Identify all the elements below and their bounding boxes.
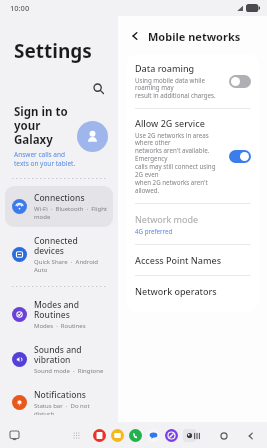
- staticText: Status bar · Do not disturb: [34, 402, 90, 415]
- staticText: Sign in to your Galaxy: [14, 104, 77, 147]
- button[interactable]: [229, 150, 251, 163]
- button[interactable]: Home: [217, 429, 230, 442]
- button[interactable]: Apps: [71, 430, 82, 441]
- button[interactable]: Notifications: [5, 383, 113, 421]
- staticText: Using mobile data while roaming may resu…: [135, 76, 223, 100]
- staticText: Connections: [34, 192, 85, 204]
- button[interactable]: Recent apps panel: [8, 429, 20, 441]
- staticText: 4G preferred: [135, 227, 173, 235]
- staticText: Network mode: [135, 213, 199, 225]
- staticText: Modes · Routines: [34, 322, 86, 330]
- staticText: Wi-Fi · Bluetooth · Flight mode: [34, 205, 108, 221]
- button[interactable]: App: [165, 429, 178, 442]
- button[interactable]: Sign in to your Galaxy: [14, 104, 108, 168]
- staticText: Sounds and vibration: [34, 344, 82, 366]
- button[interactable]: App: [111, 429, 124, 442]
- button[interactable]: Search settings: [0, 78, 118, 98]
- staticText: Sound mode · Ringtone: [34, 367, 104, 375]
- button[interactable]: App: [93, 429, 106, 442]
- staticText: 10:00: [10, 3, 30, 13]
- button[interactable]: Network mode: [126, 204, 259, 244]
- staticText: Connected devices: [34, 235, 108, 257]
- staticText: Use 2G networks in areas where other net…: [135, 131, 223, 195]
- staticText: Network operators: [135, 285, 217, 297]
- staticText: Mobile networks: [148, 29, 241, 44]
- button[interactable]: App: [147, 429, 160, 442]
- button[interactable]: Sounds and vibration: [5, 338, 113, 381]
- button[interactable]: Allow 2G service: [126, 109, 259, 203]
- button[interactable]: Access Point Names: [126, 245, 259, 275]
- button[interactable]: [229, 75, 251, 88]
- staticText: Allow 2G service: [135, 117, 205, 129]
- staticText: Quick Share · Android Auto: [34, 258, 99, 274]
- staticText: Notifications: [34, 389, 86, 401]
- button[interactable]: Connected devices: [5, 229, 113, 280]
- staticText: Modes and Routines: [34, 299, 79, 321]
- button[interactable]: Back: [244, 429, 257, 442]
- button[interactable]: Modes and Routines: [5, 293, 113, 336]
- staticText: Data roaming: [135, 62, 195, 74]
- staticText: Answer calls and texts on your tablet.: [14, 150, 76, 168]
- button[interactable]: App: [183, 429, 196, 442]
- button[interactable]: Network operators: [126, 276, 259, 306]
- staticText: Settings: [14, 38, 92, 64]
- button[interactable]: Recents: [190, 429, 203, 442]
- button[interactable]: Data roaming: [126, 54, 259, 108]
- button[interactable]: Back: [127, 28, 143, 44]
- staticText: Access Point Names: [135, 254, 222, 266]
- button[interactable]: Connections: [5, 186, 113, 227]
- button[interactable]: App: [129, 429, 142, 442]
